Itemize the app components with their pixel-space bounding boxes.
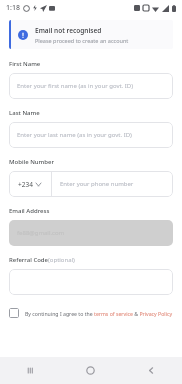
button[interactable]: Enter your last name (as in your govt. I…: [9, 122, 173, 148]
button[interactable]: [9, 269, 173, 295]
button[interactable]: Enter your phone number: [52, 171, 173, 197]
button[interactable]: Email not recognised: [9, 20, 173, 49]
staticText: 1:18: [6, 3, 20, 13]
button[interactable]: Recent apps: [0, 357, 60, 384]
staticText: Email Address: [9, 207, 50, 215]
staticText: Email not recognised: [35, 26, 102, 35]
staticText: fe88@gmail.com: [17, 229, 65, 237]
staticText: Enter your first name (as in your govt. …: [17, 82, 134, 90]
staticText: +234: [18, 180, 33, 189]
staticText: By continuing I agree to the terms of se…: [25, 310, 173, 317]
button[interactable]: Back: [121, 357, 182, 384]
staticText: First Name: [9, 60, 41, 68]
button[interactable]: Accept terms: [9, 308, 173, 318]
staticText: Enter your phone number: [60, 180, 134, 188]
button[interactable]: fe88@gmail.com: [9, 220, 173, 246]
other: Accept terms: [9, 308, 19, 318]
staticText: Last Name: [9, 109, 40, 117]
button[interactable]: +234: [9, 171, 51, 197]
staticText: Please proceed to create an account: [35, 37, 129, 44]
staticText: Referral Code(optional): [9, 256, 75, 264]
button[interactable]: Enter your first name (as in your govt. …: [9, 73, 173, 99]
staticText: Mobile Number: [9, 158, 54, 166]
button[interactable]: Home: [60, 357, 121, 384]
other: Select country code: [36, 183, 41, 186]
staticText: Enter your last name (as in your govt. I…: [17, 131, 132, 139]
